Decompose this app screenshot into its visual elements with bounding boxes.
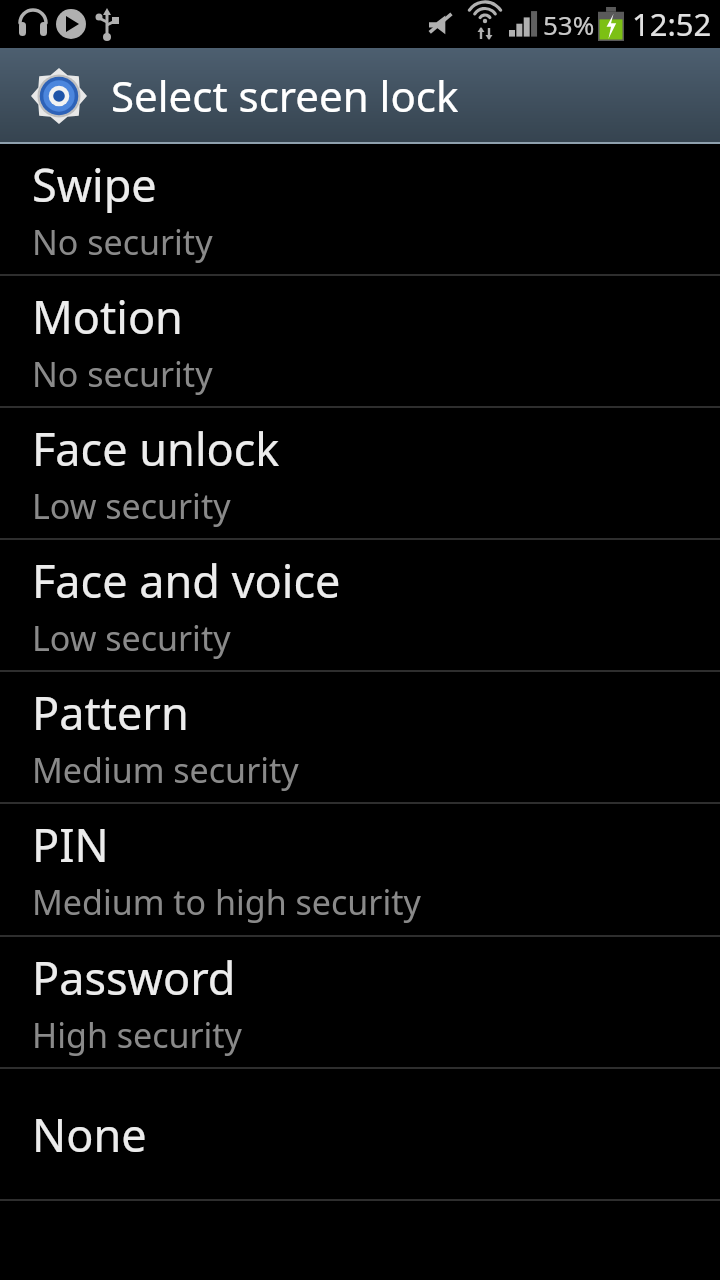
staticText: No security bbox=[32, 351, 213, 397]
button[interactable]: PIN bbox=[0, 804, 720, 935]
staticText: 53% bbox=[543, 7, 595, 42]
staticText: Swipe bbox=[32, 154, 157, 215]
staticText: Select screen lock bbox=[111, 67, 459, 124]
staticText: PIN bbox=[32, 814, 109, 875]
button[interactable]: Pattern bbox=[0, 672, 720, 802]
staticText: Medium to high security bbox=[32, 879, 421, 925]
staticText: Low security bbox=[32, 483, 231, 529]
staticText: No security bbox=[32, 219, 213, 265]
button[interactable]: Swipe bbox=[0, 144, 720, 274]
staticText: Face and voice bbox=[32, 550, 341, 611]
staticText: None bbox=[32, 1104, 147, 1165]
staticText: Face unlock bbox=[32, 418, 280, 479]
button[interactable]: None bbox=[0, 1069, 720, 1199]
staticText: Low security bbox=[32, 615, 231, 661]
button[interactable]: Face unlock bbox=[0, 408, 720, 538]
staticText: Motion bbox=[32, 286, 183, 347]
staticText: Pattern bbox=[32, 682, 189, 743]
button[interactable]: Face and voice bbox=[0, 540, 720, 670]
staticText: High security bbox=[32, 1012, 242, 1058]
staticText: 12:52 bbox=[632, 3, 712, 45]
button[interactable]: Motion bbox=[0, 276, 720, 406]
button[interactable]: Password bbox=[0, 937, 720, 1067]
staticText: Password bbox=[32, 947, 236, 1008]
staticText: Medium security bbox=[32, 747, 299, 793]
